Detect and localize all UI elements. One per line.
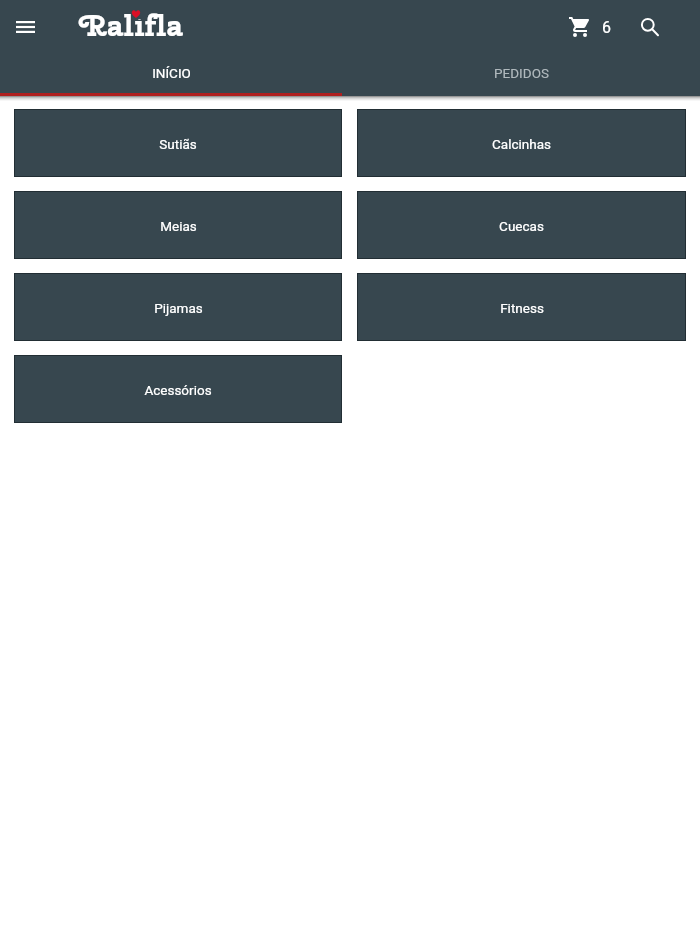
button[interactable]: Open navigation menu <box>0 0 50 53</box>
button[interactable]: INÍCIO <box>0 53 342 96</box>
staticText: Ralifla <box>80 5 184 45</box>
button[interactable]: Calcinhas <box>357 109 686 177</box>
staticText: Pijamas <box>154 300 203 316</box>
button[interactable]: PEDIDOS <box>342 53 700 96</box>
staticText: Sutiãs <box>159 136 197 152</box>
staticText: INÍCIO <box>152 65 191 81</box>
button[interactable]: Acessórios <box>14 355 342 423</box>
button[interactable]: Pijamas <box>14 273 342 341</box>
staticText: 6 <box>602 18 611 37</box>
staticText: Acessórios <box>144 382 212 398</box>
button[interactable]: Search <box>630 7 670 47</box>
button[interactable]: Meias <box>14 191 342 259</box>
button[interactable]: Fitness <box>357 273 686 341</box>
staticText: Calcinhas <box>492 136 551 152</box>
staticText: Cuecas <box>499 218 544 234</box>
button[interactable]: Sutiãs <box>14 109 342 177</box>
staticText: PEDIDOS <box>494 65 549 81</box>
staticText: Fitness <box>500 300 544 316</box>
button[interactable]: Shopping cart, 6 items <box>561 17 615 37</box>
button[interactable]: Cuecas <box>357 191 686 259</box>
staticText: Meias <box>160 218 197 234</box>
